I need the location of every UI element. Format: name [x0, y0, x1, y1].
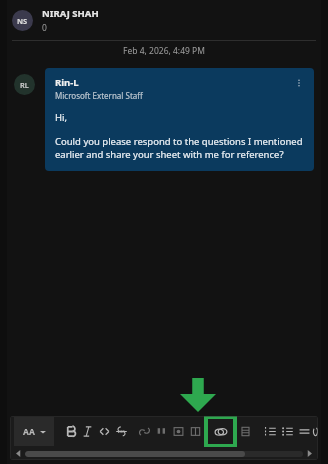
- button[interactable]: Table: [237, 417, 254, 446]
- button[interactable]: Bulleted list: [279, 417, 296, 446]
- staticText: RL: [20, 80, 29, 90]
- button[interactable]: More options: [292, 76, 306, 90]
- button[interactable]: Attach file: [187, 417, 204, 446]
- button[interactable]: Insert image: [204, 416, 237, 447]
- button[interactable]: Font size: [14, 417, 54, 446]
- button[interactable]: NS: [0, 0, 328, 40]
- button[interactable]: Quote: [153, 417, 170, 446]
- button[interactable]: Numbered list: [262, 417, 279, 446]
- button[interactable]: Insert: [170, 417, 187, 446]
- staticText: Microsoft External Staff: [55, 90, 143, 101]
- button[interactable]: Code: [96, 417, 113, 446]
- staticText: Feb 4, 2026, 4:49 PM: [123, 45, 205, 57]
- staticText: NS: [17, 16, 28, 26]
- staticText: Could you please respond to the question…: [55, 135, 306, 161]
- button[interactable]: Italic: [79, 417, 96, 446]
- staticText: Rin-L: [55, 76, 79, 89]
- button[interactable]: Strikethrough: [113, 417, 130, 446]
- button[interactable]: Indent: [296, 417, 313, 446]
- button[interactable]: Rin-L: [45, 68, 314, 171]
- staticText: NIRAJ SHAH: [42, 7, 99, 20]
- staticText: AA: [23, 426, 35, 438]
- button[interactable]: Undo: [313, 417, 318, 446]
- staticText: 0: [42, 22, 47, 34]
- staticText: Hi,: [55, 111, 68, 124]
- button[interactable]: RL: [14, 74, 35, 95]
- button[interactable]: Bold: [62, 417, 79, 446]
- button[interactable]: Link: [136, 417, 153, 446]
